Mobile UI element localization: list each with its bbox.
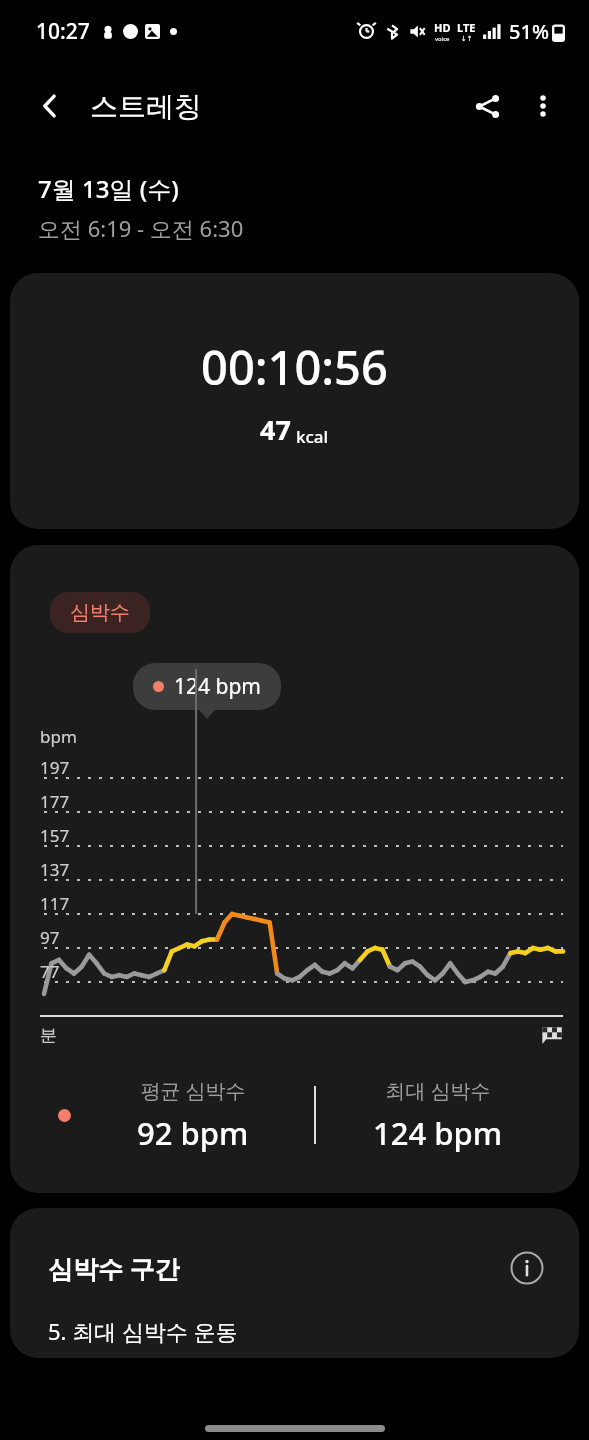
staticText: 97 bbox=[40, 926, 60, 949]
button[interactable]: 00:10:56 bbox=[10, 273, 579, 529]
staticText: HD bbox=[434, 20, 451, 35]
button[interactable]: Share bbox=[459, 78, 515, 134]
staticText: 124 bpm bbox=[373, 1112, 503, 1154]
staticText: voice bbox=[435, 35, 450, 43]
staticText: 오전 6:19 - 오전 6:30 bbox=[38, 213, 244, 243]
staticText: 7월 13일 (수) bbox=[38, 172, 179, 205]
staticText: 10:27 bbox=[36, 17, 90, 46]
staticText: 197 bbox=[40, 756, 70, 779]
staticText: 124 bpm bbox=[174, 672, 261, 701]
button[interactable]: Information bbox=[505, 1246, 549, 1290]
staticText: 51% bbox=[509, 18, 549, 45]
button[interactable]: 심박수 구간 bbox=[10, 1208, 579, 1358]
staticText: 5. 최대 심박수 운동 bbox=[48, 1316, 238, 1346]
staticText: 137 bbox=[40, 858, 70, 881]
staticText: 47 bbox=[260, 411, 291, 448]
staticText: 분 bbox=[40, 1025, 57, 1046]
staticText: bpm bbox=[40, 725, 77, 748]
button[interactable]: Back bbox=[22, 78, 78, 134]
staticText: 스트레칭 bbox=[90, 89, 202, 124]
staticText: 92 bpm bbox=[137, 1112, 249, 1154]
staticText: LTE bbox=[457, 20, 476, 35]
staticText: 157 bbox=[40, 824, 70, 847]
button[interactable]: More options bbox=[515, 78, 571, 134]
staticText: 77 bbox=[40, 960, 60, 983]
staticText: 00:10:56 bbox=[201, 335, 388, 399]
staticText: 평균 심박수 bbox=[140, 1077, 246, 1104]
staticText: 117 bbox=[40, 892, 70, 915]
staticText: 심박수 구간 bbox=[48, 1251, 180, 1285]
button[interactable]: 심박수 bbox=[50, 592, 150, 633]
staticText: 최대 심박수 bbox=[385, 1077, 491, 1104]
staticText: ↓↑ bbox=[461, 35, 473, 43]
staticText: kcal bbox=[296, 425, 329, 448]
staticText: 177 bbox=[40, 790, 70, 813]
staticText: 심박수 bbox=[70, 600, 130, 625]
